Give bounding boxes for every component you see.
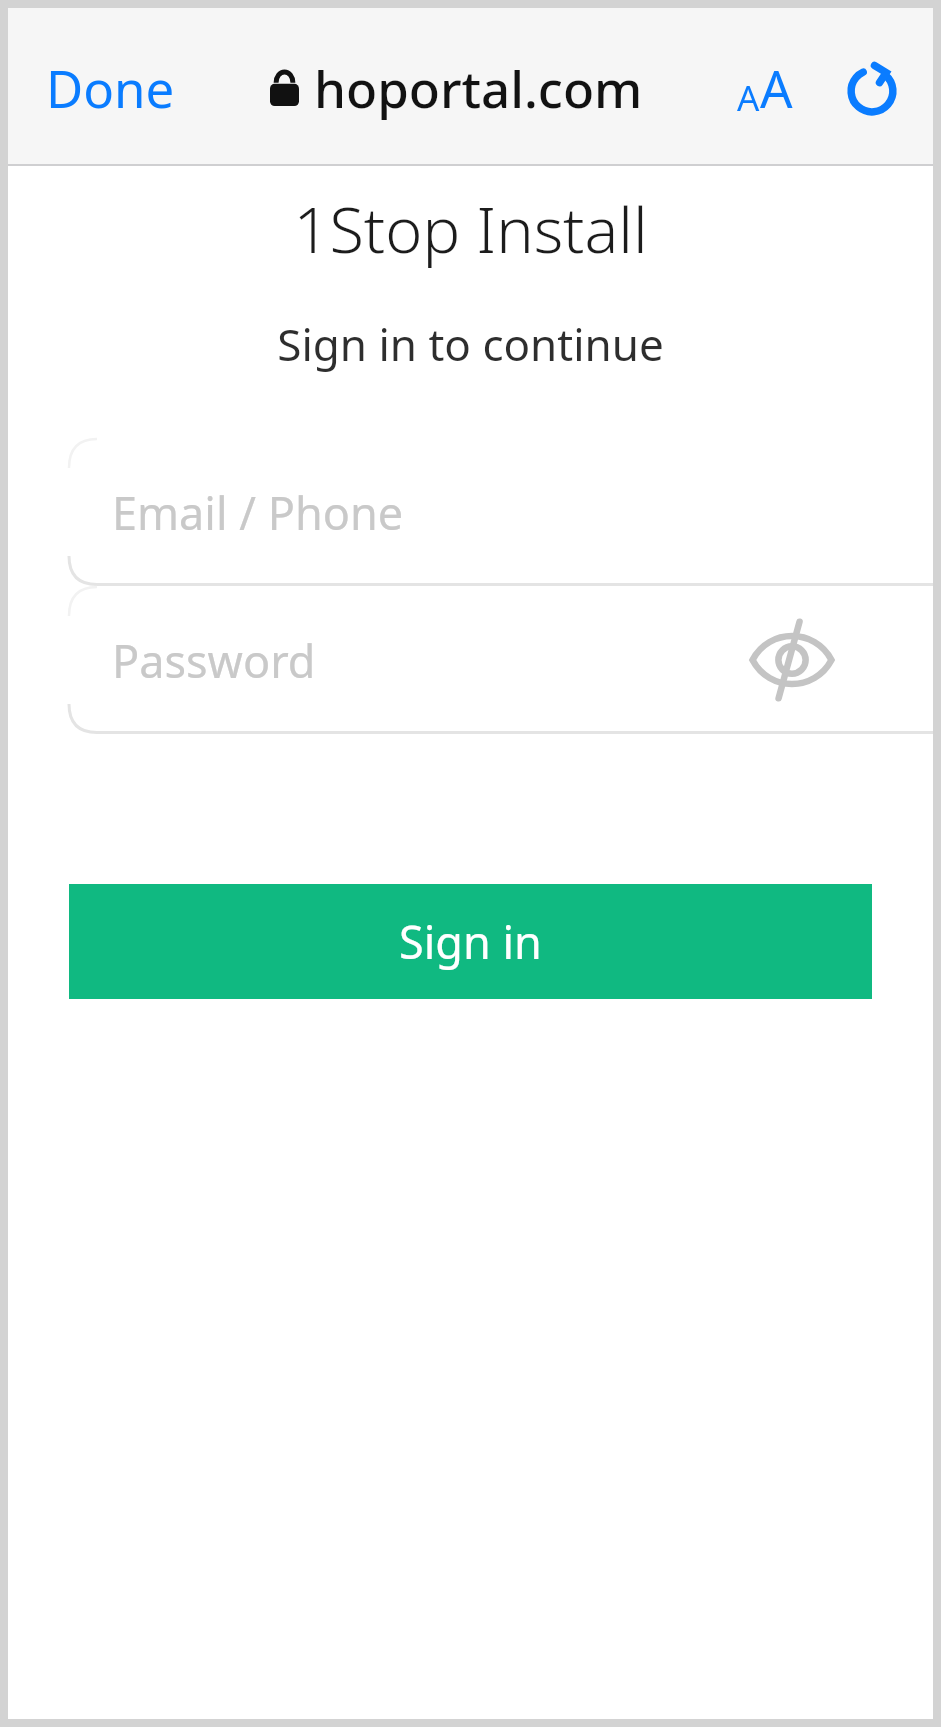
button[interactable]: Sign in: [69, 884, 872, 999]
staticText: 1Stop Install: [8, 186, 933, 272]
staticText: Done: [46, 53, 175, 122]
staticText: hoportal.com: [314, 53, 643, 122]
button[interactable]: Email / Phone: [8, 438, 933, 586]
staticText: A: [760, 53, 793, 122]
staticText: A: [737, 74, 760, 122]
button[interactable]: Show password: [747, 615, 837, 705]
button[interactable]: Done: [40, 43, 181, 132]
button[interactable]: Text size options: [733, 53, 797, 122]
staticText: Password: [112, 630, 316, 691]
staticText: Email / Phone: [112, 482, 404, 543]
button[interactable]: hoportal.com: [314, 53, 643, 122]
staticText: Sign in to continue: [8, 314, 933, 374]
button[interactable]: Reload page: [843, 59, 901, 117]
button[interactable]: Password: [8, 586, 933, 734]
staticText: Sign in: [399, 911, 542, 972]
